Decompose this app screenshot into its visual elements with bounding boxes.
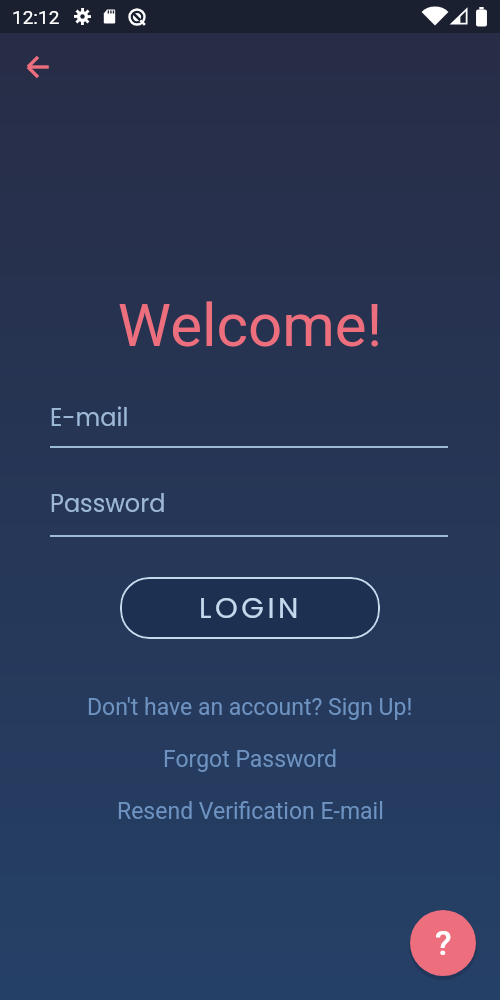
button[interactable]: Don't have an account? Sign Up! <box>87 694 413 721</box>
staticText: Welcome! <box>0 290 500 360</box>
button[interactable]: Resend Verification E-mail <box>117 798 384 825</box>
button[interactable]: ? <box>410 910 476 976</box>
button[interactable]: Forgot Password <box>163 746 338 773</box>
staticText: 12:12 <box>12 6 60 28</box>
staticText: ? <box>435 923 452 963</box>
staticText: LOGIN <box>199 588 302 629</box>
staticText: Password <box>50 487 166 521</box>
button[interactable]: LOGIN <box>120 577 380 639</box>
staticText: E-mail <box>50 401 129 435</box>
button[interactable] <box>22 51 54 83</box>
